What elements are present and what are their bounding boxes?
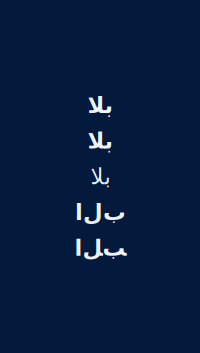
staticText: بلا: [90, 164, 110, 189]
staticText: ﺑﻠﺎ: [87, 128, 113, 154]
staticText: بلا: [87, 92, 113, 118]
staticText: ﺐﻞﺍ: [74, 235, 126, 261]
staticText: ب‌ل‌ا: [74, 199, 125, 225]
